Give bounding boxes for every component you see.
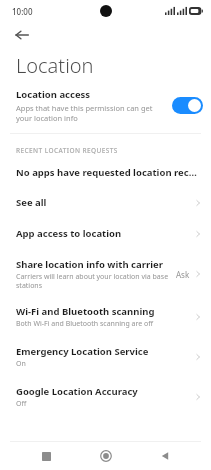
staticText: See all <box>16 196 47 209</box>
staticText: Location <box>16 52 94 79</box>
button[interactable]: Emergency Location Service <box>0 342 211 372</box>
button[interactable]: Wi-Fi and Bluetooth scanning <box>0 302 211 332</box>
button[interactable]: See all <box>0 193 211 212</box>
button[interactable]: Recents <box>33 443 59 469</box>
staticText: No apps have requested location recent.. <box>16 166 199 179</box>
staticText: Location access <box>16 88 91 101</box>
staticText: Apps that have this permission can get y… <box>16 103 166 123</box>
staticText: App access to location <box>16 227 122 240</box>
staticText: 10:00 <box>12 6 33 17</box>
button[interactable]: Share location info with carrier <box>0 255 211 293</box>
staticText: RECENT LOCATION REQUESTS <box>16 146 118 155</box>
staticText: Share location info with carrier <box>16 258 163 271</box>
staticText: Google Location Accuracy <box>16 385 138 398</box>
staticText: Ask <box>176 269 190 280</box>
button[interactable]: Google Location Accuracy <box>0 382 211 412</box>
staticText: Carriers will learn about your location … <box>16 272 176 290</box>
staticText: On <box>16 359 26 369</box>
button[interactable]: Home <box>93 443 119 469</box>
button[interactable]: App access to location <box>0 224 211 243</box>
staticText: Both Wi-Fi and Bluetooth scanning are of… <box>16 319 154 329</box>
button[interactable]: Back <box>10 23 34 47</box>
button[interactable]: Location access <box>0 82 211 127</box>
staticText: Wi-Fi and Bluetooth scanning <box>16 305 155 318</box>
staticText: Emergency Location Service <box>16 345 149 358</box>
staticText: Off <box>16 399 27 409</box>
button[interactable]: Back <box>152 443 178 469</box>
button[interactable]: No apps have requested location recent.. <box>0 164 211 181</box>
button[interactable]: Location access toggle <box>172 97 203 114</box>
